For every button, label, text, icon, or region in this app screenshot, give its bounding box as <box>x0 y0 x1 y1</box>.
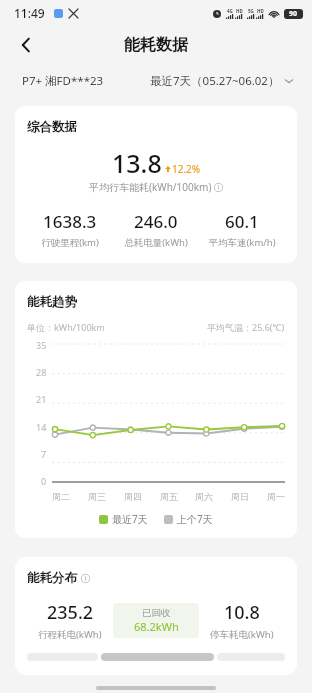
staticText: 11:49 <box>14 5 45 21</box>
staticText: 4G <box>227 8 233 14</box>
button[interactable]: 能耗分布 <box>15 557 297 675</box>
staticText: 能耗数据 <box>124 35 188 55</box>
button[interactable]: Back <box>6 26 46 64</box>
staticText: 已回收 <box>142 607 171 619</box>
staticText: 28 <box>36 366 47 378</box>
staticText: 行程耗电(kWh) <box>38 628 102 641</box>
staticText: HD <box>257 8 264 14</box>
button[interactable]: P7+ 湘FD***23 <box>22 73 104 89</box>
staticText: 14 <box>36 421 47 433</box>
button[interactable]: 246.0 <box>113 210 199 249</box>
staticText: 5G <box>248 8 254 14</box>
staticText: 12.2% <box>172 162 201 176</box>
button[interactable]: 上个7天 <box>164 512 213 526</box>
staticText: 21 <box>36 393 47 405</box>
staticText: 周三 <box>88 491 106 502</box>
button[interactable]: 最近7天（05.27~06.02） <box>150 73 294 89</box>
staticText: 停车耗电(kWh) <box>210 628 274 641</box>
button[interactable]: 10.8 <box>199 600 285 641</box>
staticText: 周五 <box>160 491 178 502</box>
staticText: 周四 <box>124 491 142 502</box>
staticText: 周六 <box>195 491 213 502</box>
staticText: 90 <box>289 9 298 19</box>
staticText: 单位：kWh/100km <box>27 321 105 333</box>
staticText: 246.0 <box>134 210 178 233</box>
staticText: 平均气温：25.6(℃) <box>207 321 285 333</box>
staticText: 最近7天 <box>112 512 148 526</box>
button[interactable]: 综合数据 <box>15 106 297 263</box>
staticText: 13.8 <box>112 146 162 180</box>
staticText: 总耗电量(kWh) <box>124 236 188 249</box>
button[interactable]: 235.2 <box>27 600 113 641</box>
staticText: 能耗分布 <box>27 570 77 586</box>
button[interactable]: 最近7天 <box>99 512 148 526</box>
button[interactable]: 60.1 <box>199 210 285 249</box>
staticText: 综合数据 <box>27 119 77 135</box>
staticText: 周一 <box>267 491 285 502</box>
staticText: 最近7天（05.27~06.02） <box>150 73 280 89</box>
staticText: 235.2 <box>47 600 94 625</box>
staticText: 1638.3 <box>43 210 97 233</box>
staticText: 0 <box>41 475 47 487</box>
staticText: 35 <box>36 339 47 351</box>
staticText: HD <box>236 8 243 14</box>
button[interactable]: 1638.3 <box>27 210 113 249</box>
staticText: 68.2kWh <box>134 619 179 634</box>
button[interactable]: 能耗趋势 <box>15 281 297 538</box>
staticText: 能耗趋势 <box>27 294 77 310</box>
staticText: 平均车速(km/h) <box>208 236 276 249</box>
staticText: 60.1 <box>225 210 259 233</box>
staticText: 7 <box>41 448 47 460</box>
staticText: 10.8 <box>224 600 260 625</box>
staticText: 周二 <box>52 491 70 502</box>
button[interactable]: 已回收 <box>113 603 199 638</box>
staticText: P7+ 湘FD***23 <box>22 73 104 89</box>
staticText: 上个7天 <box>177 512 213 526</box>
staticText: 周日 <box>231 491 249 502</box>
staticText: 平均行车能耗(kWh/100km) <box>89 180 212 194</box>
staticText: 行驶里程(km) <box>41 236 99 249</box>
